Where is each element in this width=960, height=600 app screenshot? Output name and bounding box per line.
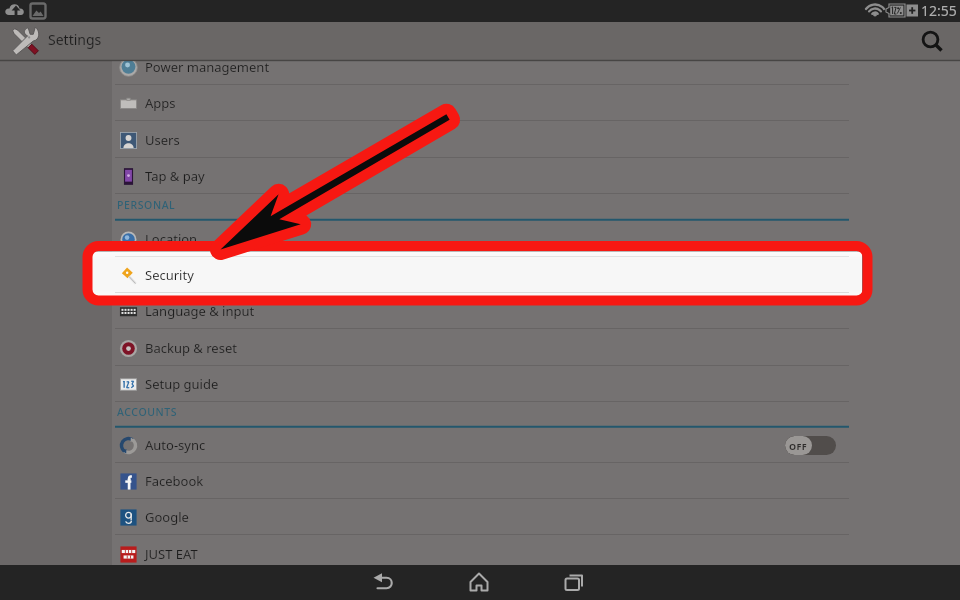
staticText: Apps [145, 94, 176, 112]
button[interactable]: Search [906, 22, 960, 61]
button[interactable]: Setup guide [112, 366, 849, 402]
button[interactable]: Back [357, 565, 411, 600]
staticText: OFF [789, 440, 808, 452]
staticText: Security [145, 266, 194, 284]
button[interactable]: Backup & reset [112, 330, 849, 366]
staticText: Auto-sync [145, 436, 206, 454]
staticText: Google [145, 508, 189, 526]
staticText: Facebook [145, 472, 204, 490]
button[interactable]: Location [112, 221, 849, 257]
button[interactable]: Recents [549, 565, 603, 600]
button[interactable]: Home [453, 565, 507, 600]
button[interactable]: Facebook [112, 463, 849, 499]
button[interactable]: OFF [785, 436, 836, 455]
button[interactable]: Power management [112, 49, 849, 85]
staticText: Power management [145, 58, 270, 76]
button[interactable]: Language & input [112, 293, 849, 329]
staticText: Users [145, 131, 180, 149]
staticText: Setup guide [145, 375, 219, 393]
button[interactable]: Auto-sync [112, 427, 849, 463]
button[interactable]: JUST EAT [112, 536, 849, 572]
button[interactable]: Google [112, 499, 849, 535]
button[interactable]: Apps [112, 85, 849, 121]
staticText: JUST EAT [145, 545, 198, 563]
staticText: Settings [48, 30, 102, 49]
staticText: PERSONAL [117, 198, 176, 212]
staticText: Tap & pay [145, 167, 205, 185]
staticText: Location [145, 230, 198, 248]
staticText: 12:55 [921, 1, 957, 20]
button[interactable]: Users [112, 122, 849, 158]
staticText: Backup & reset [145, 339, 237, 357]
staticText: Language & input [145, 302, 255, 320]
staticText: ACCOUNTS [117, 405, 178, 419]
button[interactable]: Security [112, 257, 849, 293]
button[interactable]: Tap & pay [112, 158, 849, 194]
